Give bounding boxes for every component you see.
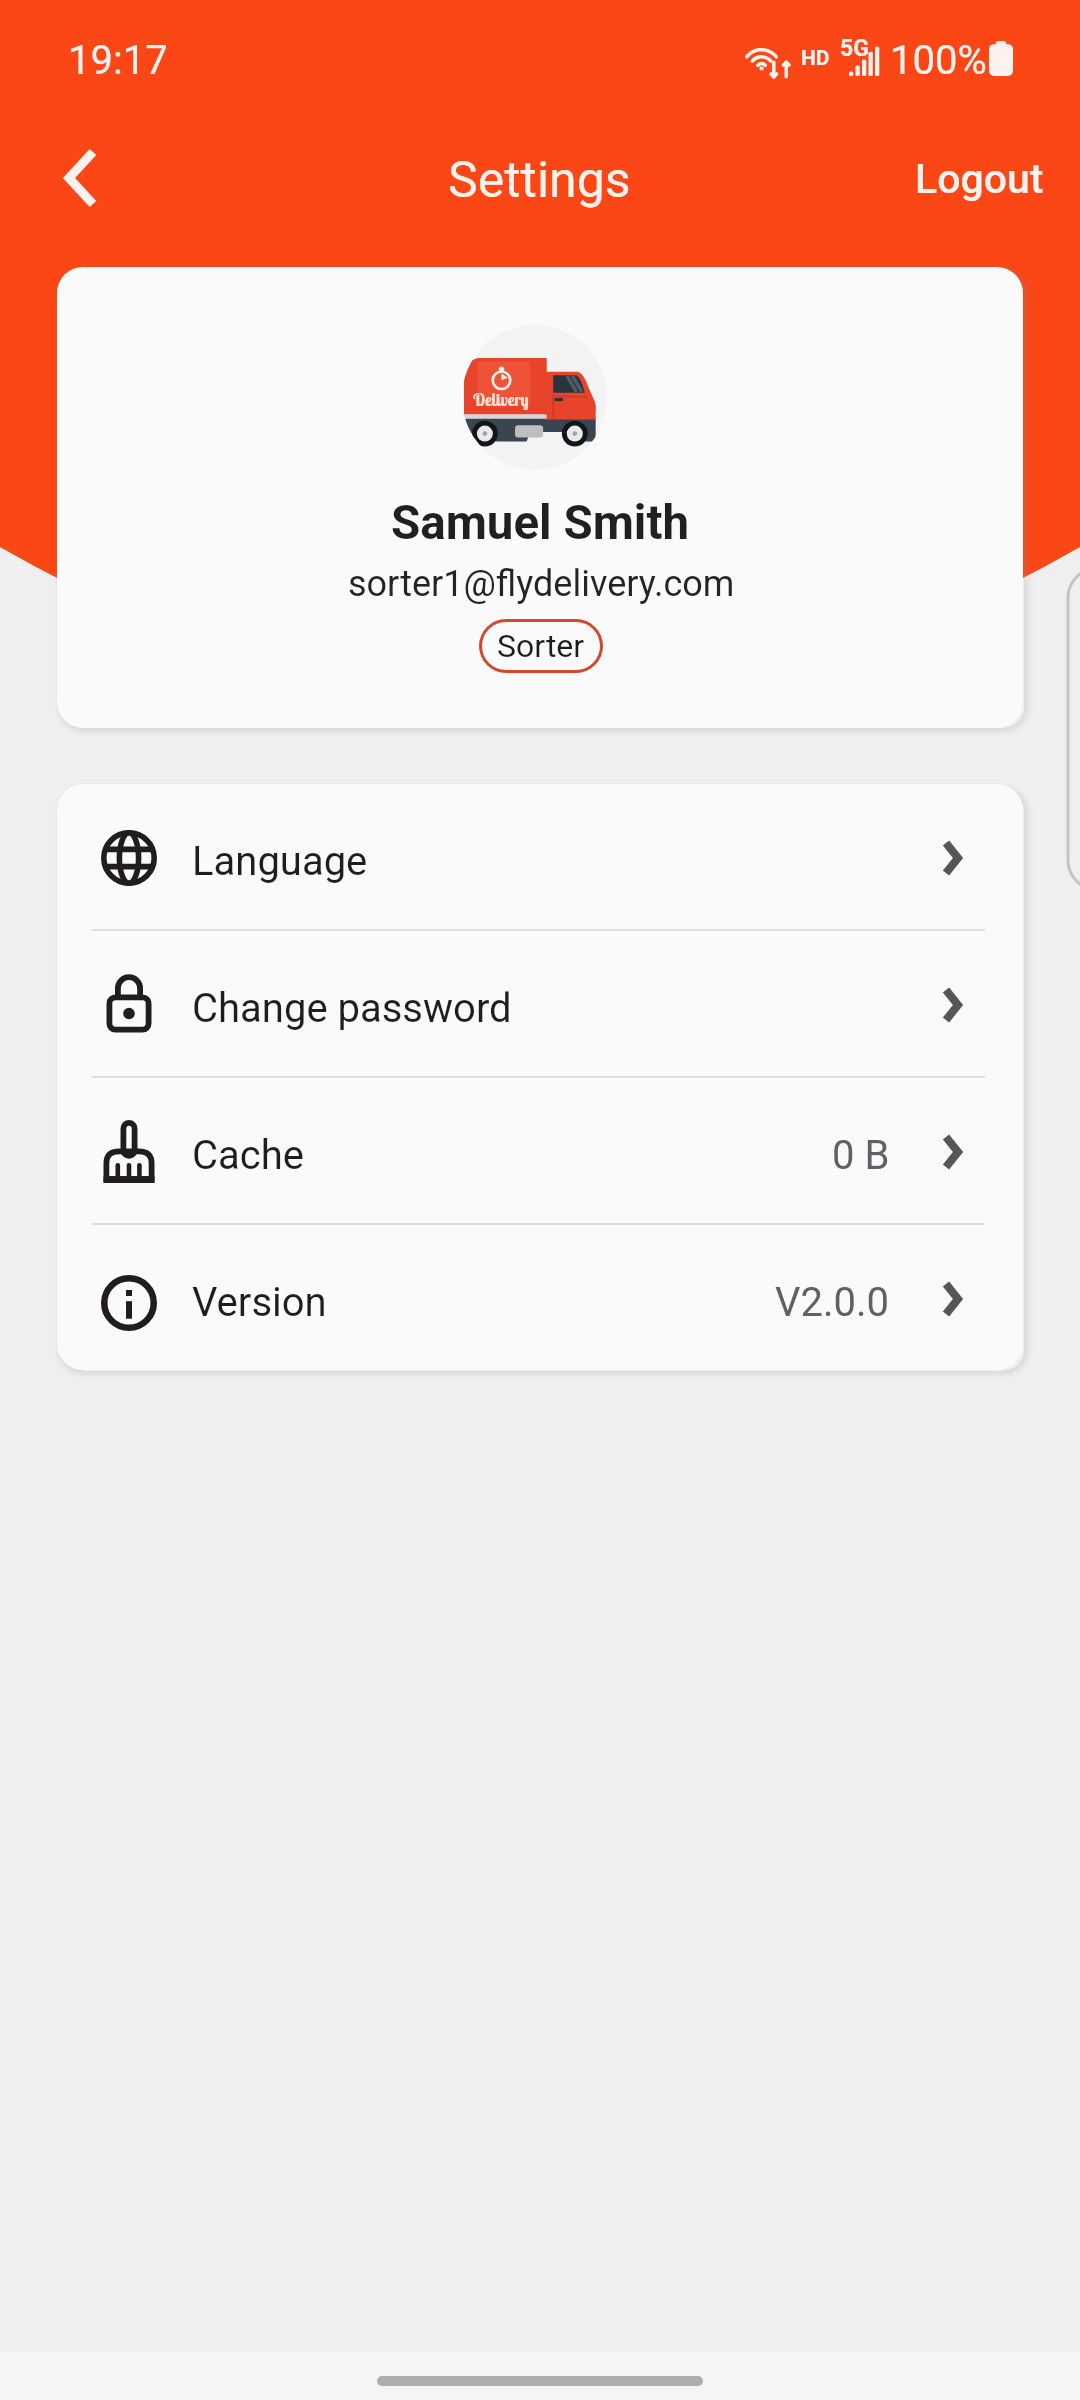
button[interactable]: Change password [57,931,1023,1076]
staticText: Samuel Smith [391,495,690,551]
button[interactable]: Language [57,784,1023,929]
button[interactable]: Version [57,1225,1023,1370]
staticText: Cache [192,1132,304,1179]
staticText: Version [192,1279,327,1326]
staticText: 100% [890,37,987,84]
staticText: 5G [840,35,869,62]
staticText: sorter1@flydelivery.com [348,563,735,605]
button[interactable]: Back [38,138,118,218]
staticText: 0 B [832,1132,890,1179]
staticText: HD [801,46,830,71]
staticText: Sorter [497,627,585,665]
staticText: Logout [915,155,1044,203]
staticText: Delivery [473,389,529,410]
staticText: Settings [448,151,631,210]
staticText: 19:17 [68,37,168,84]
staticText: Change password [192,985,512,1032]
staticText: V2.0.0 [775,1279,890,1326]
staticText: Language [192,838,368,885]
button[interactable]: Logout [901,141,1068,217]
button[interactable]: Cache [57,1078,1023,1223]
